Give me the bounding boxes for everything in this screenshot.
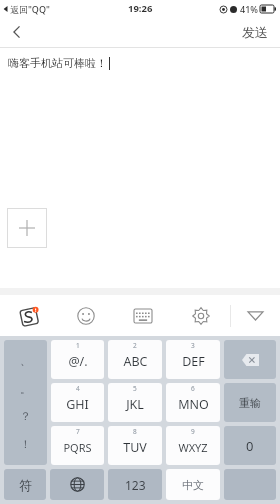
staticText: ！ <box>20 437 31 451</box>
staticText: 5 <box>133 384 137 393</box>
button[interactable]: Add image <box>7 208 47 248</box>
button[interactable]: Language <box>50 469 104 500</box>
staticText: 8 <box>133 427 137 436</box>
staticText: 7 <box>76 427 80 436</box>
staticText: 1 <box>76 341 80 350</box>
staticText: JKL <box>126 396 144 413</box>
button[interactable]: 6 <box>166 383 220 422</box>
button[interactable]: 5 <box>108 383 162 422</box>
button[interactable]: Keyboard <box>114 295 172 336</box>
button[interactable]: Punctuation <box>4 340 47 465</box>
staticText: 6 <box>191 384 195 393</box>
button[interactable]: Space <box>166 469 220 500</box>
button[interactable]: 123 <box>108 469 162 500</box>
staticText: MNO <box>178 396 209 413</box>
staticText: 、 <box>20 354 31 368</box>
button[interactable]: 发送 <box>230 20 280 44</box>
button[interactable]: 重输 <box>224 383 276 422</box>
staticText: 中文 <box>182 478 204 492</box>
button[interactable]: Emoji <box>57 295 114 336</box>
button[interactable]: 8 <box>108 426 162 465</box>
button[interactable]: Hide keyboard <box>231 295 280 336</box>
staticText: 3 <box>191 341 195 350</box>
staticText: 4 <box>76 384 80 393</box>
button[interactable]: 1 <box>51 340 104 379</box>
staticText: 。 <box>20 382 31 396</box>
button[interactable]: 9 <box>166 426 220 465</box>
staticText: 2 <box>133 341 137 350</box>
button[interactable]: 7 <box>51 426 104 465</box>
staticText: 发送 <box>242 24 268 40</box>
staticText: 返回"QQ" <box>10 3 50 15</box>
button[interactable]: Sogou input <box>0 295 57 336</box>
button[interactable]: 0 <box>224 426 276 465</box>
staticText: 9 <box>191 427 195 436</box>
staticText: 41% <box>240 3 258 15</box>
staticText: ABC <box>123 353 148 370</box>
staticText: ？ <box>20 409 31 423</box>
staticText: 符 <box>19 477 32 493</box>
staticText: 19:26 <box>128 2 153 15</box>
staticText: 0 <box>246 437 254 455</box>
staticText: @/. <box>68 353 88 370</box>
button[interactable]: 符号 <box>4 469 46 500</box>
button[interactable]: Settings <box>172 295 230 336</box>
button[interactable]: Backspace <box>224 340 276 379</box>
staticText: 123 <box>125 477 146 493</box>
staticText: 重输 <box>239 396 261 410</box>
staticText: WXYZ <box>178 440 208 455</box>
staticText: GHI <box>66 396 89 413</box>
button[interactable]: 4 <box>51 383 104 422</box>
staticText: PQRS <box>63 440 92 455</box>
button[interactable]: Back <box>0 17 34 47</box>
button[interactable]: 3 <box>166 340 220 379</box>
staticText: DEF <box>182 353 205 370</box>
staticText: 嗨客手机站可棒啦！ <box>8 56 107 70</box>
staticText: TUV <box>123 439 147 456</box>
button[interactable]: 2 <box>108 340 162 379</box>
